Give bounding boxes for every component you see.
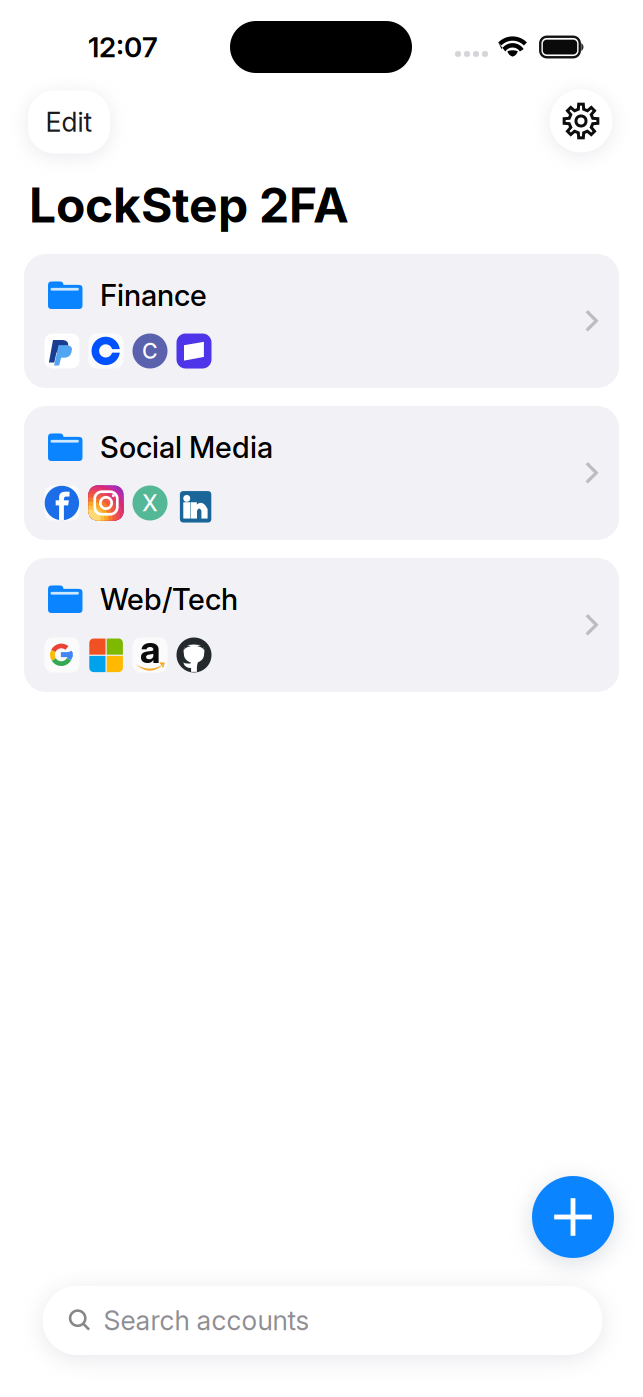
staticText: X bbox=[142, 489, 158, 517]
button[interactable]: Settings bbox=[549, 89, 612, 152]
staticText: Edit bbox=[45, 106, 92, 138]
staticText: C bbox=[142, 338, 158, 364]
staticText: Social Media bbox=[100, 429, 273, 465]
staticText: a bbox=[140, 627, 161, 672]
staticText: Finance bbox=[100, 277, 207, 313]
staticText: LockStep 2FA bbox=[29, 176, 349, 234]
button[interactable]: Social Media bbox=[24, 406, 619, 540]
staticText: Web/Tech bbox=[100, 581, 238, 617]
button[interactable]: Edit bbox=[28, 90, 110, 153]
button[interactable]: Finance bbox=[24, 254, 619, 388]
staticText: 12:07 bbox=[88, 30, 158, 64]
button[interactable]: Web/Tech bbox=[24, 558, 619, 692]
button[interactable]: Add account bbox=[532, 1176, 614, 1258]
staticText: Search accounts bbox=[103, 1304, 309, 1337]
button[interactable]: Search accounts bbox=[42, 1286, 602, 1355]
